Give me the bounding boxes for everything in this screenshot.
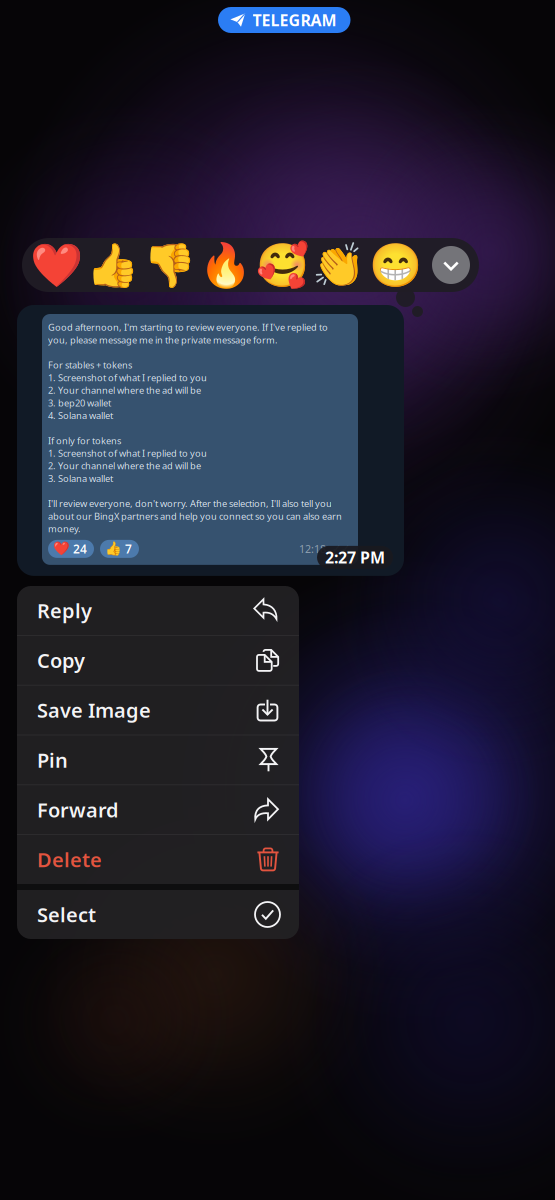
button[interactable]: Select <box>17 890 299 939</box>
staticText: 24 <box>73 541 87 557</box>
staticText: ❤️ <box>53 541 70 556</box>
button[interactable]: React ❤️ <box>36 243 76 287</box>
button[interactable]: React 🔥 <box>206 243 246 287</box>
button[interactable]: React 👏 <box>319 243 359 287</box>
button[interactable]: React 🥰 <box>262 243 302 287</box>
button[interactable]: React 👍 <box>93 243 133 287</box>
staticText: Pin <box>37 747 68 773</box>
staticText: 🥰 <box>256 241 309 289</box>
staticText: ❤️ <box>29 241 82 289</box>
button[interactable]: More reactions <box>432 246 470 284</box>
button[interactable]: ❤️ <box>48 540 94 558</box>
staticText: Good afternoon, I'm starting to review e… <box>48 321 342 535</box>
staticText: Delete <box>37 846 102 873</box>
button[interactable]: TELEGRAM <box>218 7 350 33</box>
staticText: 2:27 PM <box>325 547 385 568</box>
button[interactable]: Save Image <box>17 686 299 735</box>
button[interactable]: Pin <box>17 735 299 784</box>
staticText: Copy <box>37 647 85 674</box>
staticText: ✓✓ <box>332 543 350 555</box>
staticText: Forward <box>37 796 119 823</box>
button[interactable]: Reply <box>17 586 299 635</box>
staticText: Select <box>37 901 96 928</box>
staticText: 👍 <box>86 241 139 289</box>
button[interactable]: React 👎 <box>149 243 189 287</box>
button[interactable]: React 😁 <box>375 243 415 287</box>
staticText: TELEGRAM <box>252 9 336 31</box>
button[interactable]: 👍 <box>100 540 139 558</box>
staticText: 7 <box>125 541 132 557</box>
staticText: 👎 <box>143 241 196 289</box>
staticText: Save Image <box>37 697 151 723</box>
staticText: 👏 <box>312 241 365 289</box>
staticText: 😁 <box>369 241 422 289</box>
button[interactable]: Copy <box>17 636 299 685</box>
staticText: 12:18 <box>299 542 326 556</box>
staticText: Reply <box>37 597 92 624</box>
button[interactable]: Delete <box>17 835 299 884</box>
button[interactable]: Forward <box>17 785 299 834</box>
staticText: 👍 <box>105 541 122 556</box>
staticText: 🔥 <box>199 241 252 289</box>
